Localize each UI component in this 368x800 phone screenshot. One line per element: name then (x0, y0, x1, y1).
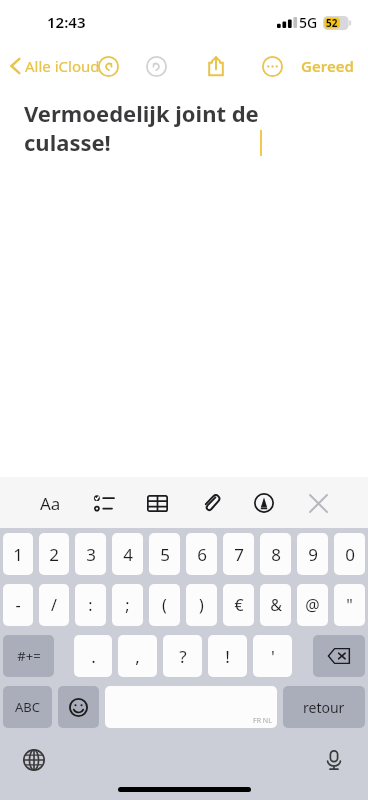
staticText: 5G (299, 13, 318, 32)
button[interactable]: Alle iCloud (6, 52, 104, 80)
staticText: 7 (234, 543, 244, 566)
button[interactable]: retour (283, 686, 365, 728)
staticText: ? (179, 645, 187, 668)
button[interactable]: ) (186, 584, 217, 626)
button[interactable]: : (75, 584, 106, 626)
button[interactable]: 0 (334, 533, 365, 575)
button[interactable]: , (118, 635, 157, 677)
staticText: & (270, 594, 282, 616)
staticText: Vermoedelijk joint de culasse! (24, 98, 259, 157)
button[interactable]: Space (105, 686, 277, 728)
button[interactable]: € (223, 584, 254, 626)
button[interactable]: @ (297, 584, 328, 626)
button[interactable]: 5 (149, 533, 180, 575)
staticText: FR NL (253, 716, 272, 726)
button[interactable]: 8 (260, 533, 291, 575)
button[interactable]: Attach (191, 483, 231, 523)
staticText: , (135, 645, 140, 668)
button[interactable]: Text format (30, 483, 70, 523)
button[interactable]: Markup (244, 483, 284, 523)
staticText: ' (271, 645, 275, 668)
staticText: ! (225, 645, 230, 668)
staticText: @ (305, 594, 320, 616)
button[interactable]: ! (208, 635, 247, 677)
button[interactable]: " (334, 584, 365, 626)
button[interactable]: ABC (3, 686, 52, 728)
staticText: ; (125, 594, 130, 616)
staticText: - (15, 594, 21, 616)
button[interactable]: #+= (3, 635, 54, 677)
button[interactable]: Checklist (84, 483, 124, 523)
button[interactable]: 3 (75, 533, 106, 575)
staticText: 3 (86, 543, 96, 566)
staticText: ) (199, 594, 204, 616)
button[interactable]: Close keyboard (298, 483, 338, 523)
button[interactable]: Redo (139, 49, 173, 83)
button[interactable]: 2 (39, 533, 69, 575)
button[interactable]: 7 (223, 533, 254, 575)
staticText: / (51, 594, 57, 616)
staticText: 12:43 (47, 12, 86, 32)
staticText: 2 (49, 543, 59, 566)
button[interactable]: Undo (91, 49, 125, 83)
staticText: Alle iCloud (25, 56, 100, 76)
staticText: € (234, 594, 244, 616)
staticText: 6 (197, 543, 207, 566)
staticText: retour (303, 698, 345, 717)
button[interactable]: . (74, 635, 112, 677)
button[interactable]: Backspace (313, 635, 365, 677)
button[interactable]: ; (112, 584, 143, 626)
button[interactable]: ? (163, 635, 202, 677)
button[interactable]: ( (149, 584, 180, 626)
staticText: #+= (17, 647, 41, 665)
staticText: . (91, 645, 96, 668)
staticText: Gereed (301, 56, 354, 76)
button[interactable]: 1 (3, 533, 33, 575)
staticText: Aa (40, 492, 61, 515)
button[interactable]: 9 (297, 533, 328, 575)
button[interactable]: Gereed (295, 52, 360, 80)
button[interactable]: 6 (186, 533, 217, 575)
button[interactable]: ' (253, 635, 292, 677)
staticText: 52 (326, 16, 338, 30)
staticText: 8 (271, 543, 281, 566)
button[interactable]: 4 (112, 533, 143, 575)
staticText: : (88, 594, 93, 616)
staticText: 9 (308, 543, 318, 566)
button[interactable]: & (260, 584, 291, 626)
staticText: 5 (160, 543, 170, 566)
button[interactable]: / (39, 584, 69, 626)
staticText: " (346, 594, 353, 616)
staticText: 0 (345, 543, 355, 566)
button[interactable]: Table (137, 483, 177, 523)
staticText: 1 (13, 543, 23, 566)
button[interactable]: More options (255, 49, 289, 83)
staticText: ( (162, 594, 167, 616)
button[interactable]: Share (199, 49, 233, 83)
button[interactable]: Change keyboard (14, 740, 54, 780)
staticText: ABC (15, 698, 40, 716)
button[interactable]: - (3, 584, 33, 626)
button[interactable]: Emoji (58, 686, 99, 728)
button[interactable]: Dictate (314, 740, 354, 780)
staticText: 4 (123, 543, 133, 566)
